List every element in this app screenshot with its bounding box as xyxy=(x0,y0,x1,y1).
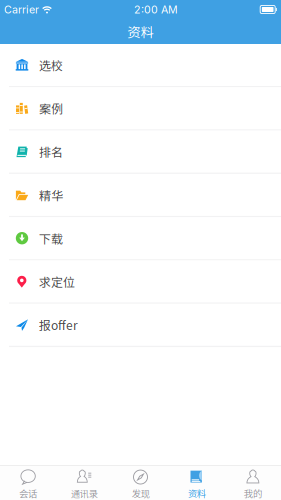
button[interactable]: 排名 xyxy=(0,131,281,174)
staticText: 报offer xyxy=(39,316,78,333)
button[interactable]: 资料 xyxy=(169,466,225,500)
staticText: 精华 xyxy=(39,186,63,204)
button[interactable]: 发现 xyxy=(112,466,169,500)
staticText: Carrier xyxy=(4,3,39,16)
staticText: 求定位 xyxy=(39,273,75,290)
staticText: 下载 xyxy=(39,229,63,247)
button[interactable]: 我的 xyxy=(225,466,281,500)
button[interactable]: 报offer xyxy=(0,304,281,347)
button[interactable]: 精华 xyxy=(0,174,281,217)
button[interactable]: 案例 xyxy=(0,87,281,131)
staticText: 我的 xyxy=(244,486,262,500)
staticText: 排名 xyxy=(39,143,63,160)
staticText: 2:00 AM xyxy=(134,3,178,16)
staticText: 会话 xyxy=(19,486,37,500)
button[interactable]: 通讯录 xyxy=(56,466,112,500)
staticText: 资料 xyxy=(188,486,206,500)
button[interactable]: 选校 xyxy=(0,44,281,87)
button[interactable]: 求定位 xyxy=(0,260,281,304)
staticText: 案例 xyxy=(39,100,63,117)
button[interactable]: 会话 xyxy=(0,466,56,500)
staticText: 选校 xyxy=(39,56,63,74)
staticText: 通讯录 xyxy=(71,486,98,500)
staticText: 资料 xyxy=(127,22,153,41)
staticText: 发现 xyxy=(131,486,149,500)
button[interactable]: 下载 xyxy=(0,217,281,260)
